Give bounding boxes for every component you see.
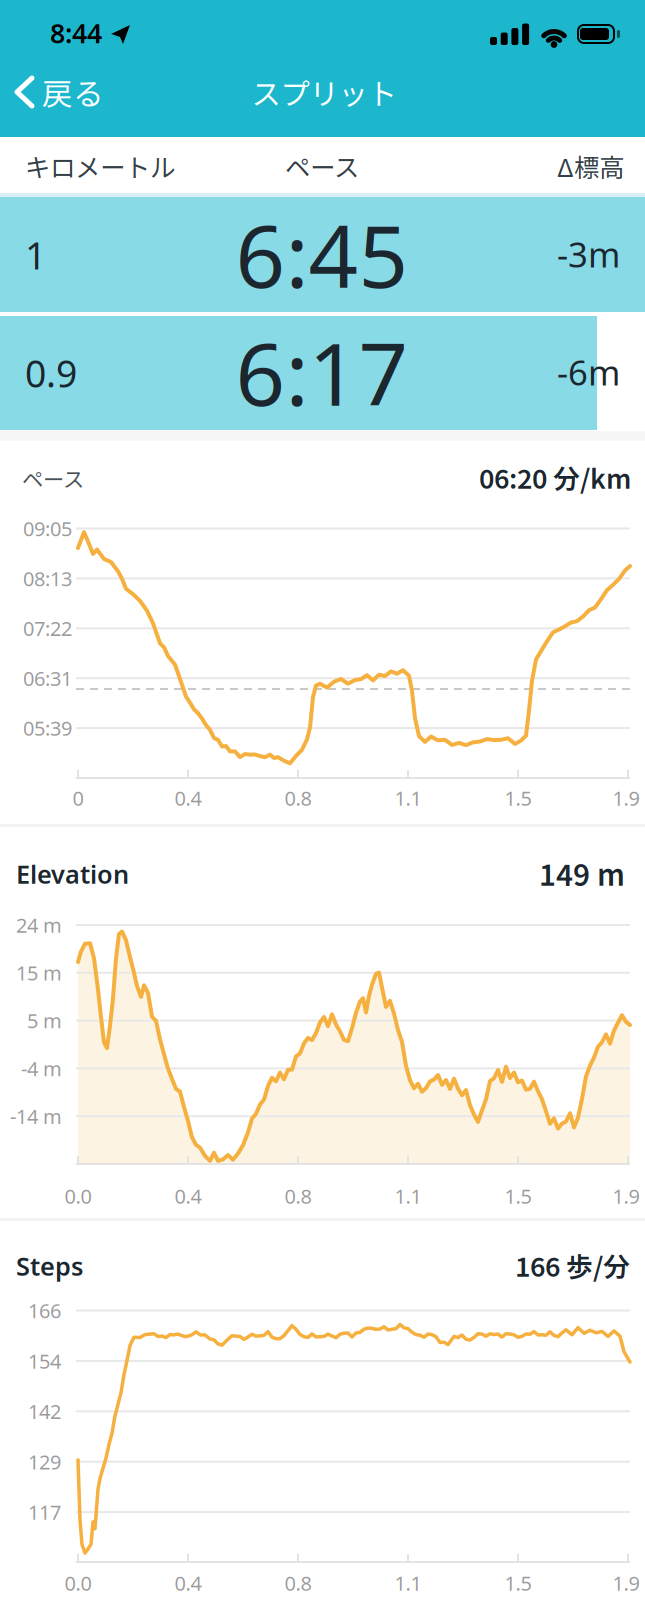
staticText: 24 m xyxy=(16,911,62,939)
staticText: 1.9 xyxy=(612,1569,639,1597)
button[interactable]: 戻る xyxy=(0,62,170,122)
staticText: 0.8 xyxy=(284,784,311,812)
staticText: 1.9 xyxy=(612,784,639,812)
staticText: 5 m xyxy=(27,1007,62,1034)
staticText: 1.5 xyxy=(504,1182,531,1210)
staticText: 1.1 xyxy=(394,1182,421,1210)
staticText: 1 xyxy=(25,230,46,280)
staticText: 戻る xyxy=(42,70,104,114)
staticText: 15 m xyxy=(16,959,62,986)
staticText: Elevation xyxy=(16,857,129,891)
staticText: 06:20 分/km xyxy=(479,458,631,496)
staticText: 117 xyxy=(28,1498,61,1526)
staticText: 1.5 xyxy=(504,784,531,812)
staticText: 0.4 xyxy=(174,1569,201,1597)
staticText: 0.9 xyxy=(25,348,77,398)
staticText: 0 xyxy=(72,784,83,812)
staticText: キロメートル xyxy=(25,148,175,184)
staticText: 0.8 xyxy=(284,1182,311,1210)
staticText: -3m xyxy=(557,230,620,278)
staticText: 154 xyxy=(28,1347,61,1374)
staticText: 129 xyxy=(28,1448,61,1475)
staticText: 1.1 xyxy=(394,1569,421,1597)
staticText: 05:39 xyxy=(23,714,72,742)
staticText: 08:13 xyxy=(23,565,72,592)
staticText: 06:31 xyxy=(23,665,72,692)
staticText: 166 xyxy=(28,1297,61,1324)
staticText: 6:17 xyxy=(235,313,408,431)
staticText: -14 m xyxy=(10,1103,62,1130)
staticText: 8:44 xyxy=(50,15,102,51)
staticText: 0.0 xyxy=(64,1569,91,1597)
staticText: 0.4 xyxy=(174,784,201,812)
staticText: 0.8 xyxy=(284,1569,311,1597)
staticText: 149 m xyxy=(539,852,625,894)
staticText: -4 m xyxy=(21,1055,62,1082)
staticText: ペース xyxy=(22,463,84,493)
staticText: 6:45 xyxy=(235,195,408,313)
staticText: スプリット xyxy=(251,71,396,113)
staticText: 142 xyxy=(28,1398,61,1425)
staticText: ペース xyxy=(285,148,359,184)
staticText: 1.5 xyxy=(504,1569,531,1597)
staticText: 0.0 xyxy=(64,1182,91,1210)
staticText: Δ標高 xyxy=(557,148,624,184)
staticText: 166 歩/分 xyxy=(515,1246,630,1284)
staticText: 1.9 xyxy=(612,1182,639,1210)
staticText: 0.4 xyxy=(174,1182,201,1210)
staticText: 1.1 xyxy=(394,784,421,812)
staticText: Steps xyxy=(16,1249,83,1283)
staticText: -6m xyxy=(557,348,620,396)
staticText: 07:22 xyxy=(23,615,72,642)
staticText: 09:05 xyxy=(23,515,72,542)
